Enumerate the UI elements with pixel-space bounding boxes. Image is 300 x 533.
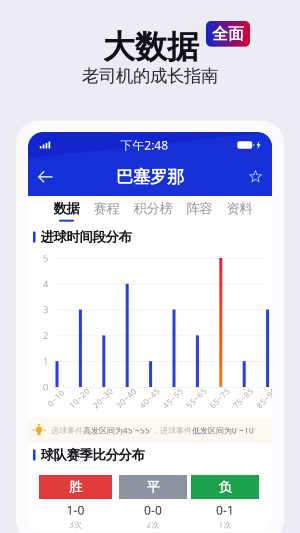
staticText: 高发区间为45'~55': [83, 425, 152, 436]
staticText: 45~55: [160, 393, 185, 403]
button[interactable]: 数据: [53, 196, 79, 226]
staticText: 赛程: [93, 200, 119, 217]
button[interactable]: 赛程: [93, 196, 119, 226]
staticText: 巴塞罗那: [116, 166, 184, 188]
button[interactable]: 资料: [226, 196, 252, 226]
staticText: 1-0: [66, 502, 84, 518]
staticText: 球队赛季比分分布: [40, 447, 144, 463]
staticText: 进球事件: [51, 426, 83, 435]
staticText: 进球时间段分布: [40, 229, 131, 245]
staticText: 低发区间为0'~10': [192, 425, 256, 436]
staticText: 1次: [218, 519, 231, 530]
staticText: 40~45: [137, 393, 162, 403]
staticText: ，进球事件: [152, 426, 192, 435]
staticText: 1: [43, 355, 48, 367]
staticText: 数据: [53, 200, 79, 217]
staticText: 2: [43, 329, 48, 342]
staticText: 30~40: [114, 393, 139, 403]
staticText: 0~10: [46, 393, 66, 403]
button[interactable]: 返回: [37, 164, 67, 190]
staticText: 全面: [212, 24, 244, 44]
staticText: 0-0: [144, 502, 162, 518]
staticText: 65~75: [207, 393, 232, 403]
button[interactable]: 平: [119, 475, 187, 499]
staticText: 85~90: [254, 393, 279, 403]
staticText: 资料: [226, 200, 252, 217]
staticText: 老司机的成长指南: [82, 65, 218, 87]
button[interactable]: 胜: [39, 475, 112, 499]
staticText: 5: [43, 252, 48, 264]
staticText: 20~30: [90, 393, 115, 403]
button[interactable]: 积分榜: [133, 196, 172, 226]
staticText: 3: [43, 303, 48, 316]
staticText: 下午2:48: [120, 137, 168, 153]
staticText: 0: [43, 381, 48, 393]
staticText: 负: [218, 479, 231, 495]
button[interactable]: 收藏: [233, 164, 263, 190]
staticText: 10~20: [67, 393, 92, 403]
button[interactable]: 阵容: [186, 196, 212, 226]
staticText: 4: [43, 278, 48, 290]
staticText: 大数据: [103, 27, 199, 67]
button[interactable]: 负: [191, 475, 259, 499]
staticText: 2次: [146, 519, 159, 530]
staticText: 75~85: [231, 393, 256, 403]
staticText: 胜: [69, 479, 82, 495]
staticText: 0-1: [216, 502, 234, 518]
staticText: 平: [146, 479, 159, 495]
staticText: 积分榜: [133, 200, 172, 217]
staticText: 55~65: [184, 393, 209, 403]
staticText: 阵容: [186, 200, 212, 217]
staticText: 3次: [69, 519, 82, 530]
